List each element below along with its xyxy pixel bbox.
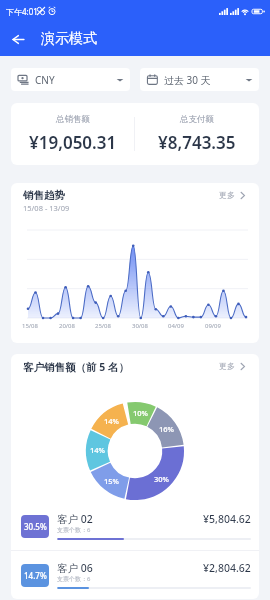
staticText: 10%	[133, 408, 148, 418]
staticText: 支票个数：6	[57, 526, 91, 534]
button[interactable]: Back	[0, 22, 34, 56]
button[interactable]: CNY	[11, 68, 130, 91]
staticText: 14%	[104, 416, 119, 426]
staticText: 销售趋势	[23, 189, 65, 202]
staticText: 更多	[219, 361, 235, 371]
staticText: 下午4:01	[6, 6, 38, 17]
staticText: 客户销售额（前 5 名）	[23, 360, 129, 374]
staticText: 更多	[219, 190, 235, 200]
staticText: 20/08	[59, 322, 75, 330]
staticText: 支票个数：6	[57, 575, 91, 583]
staticText: 25/08	[95, 322, 111, 330]
staticText: 过去 30 天	[164, 73, 211, 87]
staticText: 09/09	[205, 322, 221, 330]
staticText: 04/09	[168, 322, 184, 330]
staticText: 15/08 - 13/09	[23, 203, 70, 213]
button[interactable]: 更多	[219, 360, 247, 371]
button[interactable]: 总销售额	[11, 114, 134, 154]
button[interactable]: 14.7%	[11, 551, 259, 599]
staticText: 15/08	[22, 322, 38, 330]
staticText: 总支付额	[180, 114, 214, 125]
staticText: 演示模式	[41, 30, 97, 48]
staticText: ¥5,804.62	[203, 512, 251, 526]
button[interactable]: 30.5%	[11, 502, 259, 550]
staticText: 14%	[90, 445, 105, 455]
staticText: 30/08	[132, 322, 148, 330]
staticText: 30%	[154, 474, 169, 484]
button[interactable]: 更多	[219, 189, 247, 200]
staticText: 15%	[104, 476, 119, 486]
staticText: 14.7%	[24, 570, 47, 581]
staticText: ¥8,743.35	[158, 131, 236, 154]
button[interactable]: 过去 30 天	[140, 68, 259, 91]
staticText: 客户 06	[57, 561, 93, 575]
button[interactable]: 总支付额	[135, 114, 259, 154]
staticText: ¥2,804.62	[203, 561, 251, 575]
staticText: ¥19,050.31	[29, 131, 117, 154]
staticText: 客户 02	[57, 512, 93, 526]
staticText: CNY	[35, 73, 55, 87]
staticText: 总销售额	[56, 114, 90, 125]
staticText: 30.5%	[24, 521, 47, 532]
staticText: 16%	[159, 424, 174, 434]
